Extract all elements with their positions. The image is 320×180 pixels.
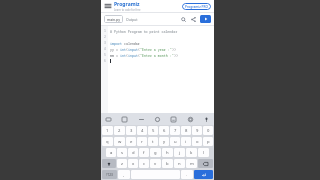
button[interactable]: 9 [192,126,202,135]
staticText: int [120,47,126,51]
button[interactable]: . [181,170,193,179]
staticText: ( [126,53,128,57]
staticText: Programiz [114,1,140,8]
staticText: i [185,139,187,145]
button[interactable]: Voice input [202,115,211,124]
button[interactable]: 1 [102,126,113,135]
button[interactable]: , [118,170,130,179]
staticText: Learn to code for free [114,8,141,12]
button[interactable]: t [148,137,158,146]
button[interactable]: b [162,159,173,168]
button[interactable]: Enter [194,170,213,179]
button[interactable]: z [117,159,127,168]
staticText: n [178,161,181,167]
button[interactable]: j [174,148,185,157]
staticText: 4 [104,47,106,51]
button[interactable]: Backspace [198,159,213,168]
staticText: o [196,139,199,145]
staticText: "Enter a month :" [140,53,174,57]
button[interactable]: e [126,137,136,146]
button[interactable]: Keyboard switch [104,115,113,124]
staticText: 2 [104,35,106,39]
button[interactable]: i [181,137,191,146]
button[interactable]: d [128,148,138,157]
staticText: calendar [122,41,140,45]
staticText: t [152,139,154,145]
staticText: yy = [110,47,120,51]
button[interactable]: o [192,137,202,146]
button[interactable]: Search [180,16,187,23]
button[interactable]: h [162,148,173,157]
staticText: ( [138,47,140,51]
staticText: u [174,139,177,145]
button[interactable]: 2 [114,126,125,135]
button[interactable]: g [150,148,161,157]
button[interactable]: l [198,148,209,157]
button[interactable]: Run [200,15,211,23]
button[interactable]: 0 [203,126,213,135]
button[interactable]: s [117,148,127,157]
staticText: ( [126,47,128,51]
button[interactable]: Programiz PRO [182,3,211,10]
staticText: j [179,150,181,156]
button[interactable]: Settings [186,115,195,124]
staticText: mm = [110,53,120,57]
button[interactable]: Programiz [114,1,141,12]
button[interactable]: u [170,137,180,146]
button[interactable]: x [128,159,138,168]
button[interactable]: c [139,159,149,168]
staticText: 0 [207,128,210,134]
button[interactable]: 3 [126,126,136,135]
staticText: "Enter a year :" [140,47,172,51]
staticText: 5 [104,53,106,57]
button[interactable]: Clipboard [137,115,146,124]
staticText: ( [138,53,140,57]
button[interactable]: 8 [181,126,191,135]
staticText: p [207,139,210,145]
button[interactable]: a [106,148,116,157]
staticText: 5 [152,128,155,134]
staticText: m [190,161,194,167]
button[interactable]: 6 [159,126,169,135]
button[interactable]: m [186,159,197,168]
staticText: 1 [106,128,109,134]
button[interactable]: Translate [169,115,178,124]
button[interactable]: Symbols [102,170,117,179]
button[interactable]: 4 [137,126,147,135]
staticText: 6 [104,59,106,63]
button[interactable]: Emoji [153,115,162,124]
button[interactable]: Shift [102,159,116,168]
button[interactable]: f [139,148,149,157]
staticText: v [154,161,157,167]
staticText: # Python Program to print calendar [110,29,178,33]
button[interactable]: main.py [104,15,123,23]
staticText: input [128,47,138,51]
staticText: s [121,150,124,156]
button[interactable]: y [159,137,169,146]
button[interactable]: # Python Program to print calendar [108,26,214,113]
button[interactable]: q [102,137,113,146]
staticText: c [143,161,146,167]
button[interactable]: w [114,137,125,146]
button[interactable]: Menu [104,2,112,10]
staticText: k [190,150,193,156]
staticText: g [154,150,157,156]
button[interactable]: v [150,159,161,168]
staticText: )) [172,47,176,51]
button[interactable]: r [137,137,147,146]
button[interactable]: 5 [148,126,158,135]
button[interactable]: Share [190,16,197,23]
staticText: , [123,172,125,177]
button[interactable]: p [203,137,213,146]
staticText: 3 [104,41,106,45]
button[interactable]: Output [126,15,138,23]
button[interactable]: n [174,159,185,168]
staticText: int [120,53,126,57]
staticText: a [110,150,113,156]
button[interactable]: GIF [120,115,129,124]
button[interactable]: 7 [170,126,180,135]
button[interactable]: k [186,148,197,157]
staticText: 9 [196,128,199,134]
staticText: 7 [174,128,177,134]
